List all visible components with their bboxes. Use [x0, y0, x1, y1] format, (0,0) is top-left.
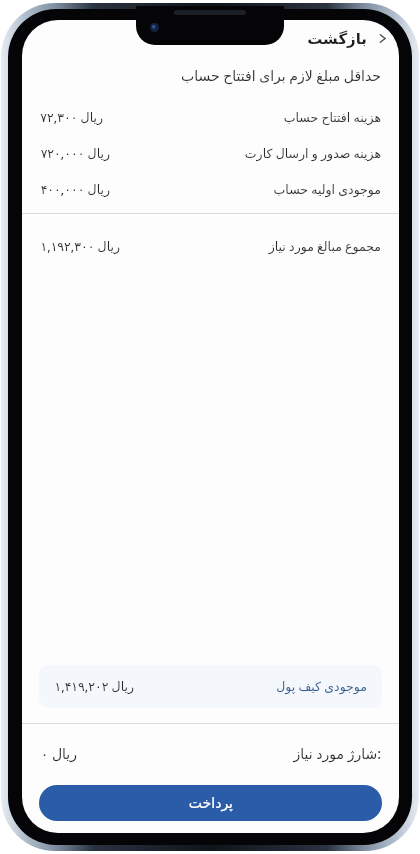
button[interactable]: بازگشت	[297, 26, 399, 51]
button[interactable]: ۱,۴۱۹,۲۰۲ ریال	[39, 665, 382, 708]
staticText: ۱,۱۹۲,۳۰۰ ریال	[40, 238, 120, 255]
staticText: موجودی کیف پول	[276, 678, 367, 695]
staticText: شارژ مورد نیاز:	[293, 744, 381, 763]
staticText: پرداخت	[188, 795, 233, 811]
staticText: هزینه افتتاح حساب	[283, 109, 381, 126]
button[interactable]: ۷۲۰,۰۰۰ ریال	[22, 135, 399, 171]
staticText: ۰ ریال	[40, 744, 77, 763]
staticText: ۴۰۰,۰۰۰ ریال	[40, 181, 110, 198]
staticText: ۷۲,۳۰۰ ریال	[40, 109, 103, 126]
staticText: بازگشت	[307, 30, 367, 47]
staticText: حداقل مبلغ لازم برای افتتاح حساب	[180, 66, 381, 85]
staticText: مجموع مبالغ مورد نیاز	[268, 238, 381, 255]
button[interactable]: پرداخت	[39, 785, 382, 821]
staticText: ۱,۴۱۹,۲۰۲ ریال	[54, 678, 134, 695]
staticText: ۷۲۰,۰۰۰ ریال	[40, 145, 110, 162]
button[interactable]: ۷۲,۳۰۰ ریال	[22, 99, 399, 135]
button[interactable]: ۱,۱۹۲,۳۰۰ ریال	[22, 214, 399, 264]
staticText: هزینه صدور و ارسال کارت	[244, 145, 381, 162]
staticText: موجودی اولیه حساب	[273, 181, 381, 198]
other: Back	[376, 32, 389, 45]
button[interactable]: ۴۰۰,۰۰۰ ریال	[22, 171, 399, 207]
